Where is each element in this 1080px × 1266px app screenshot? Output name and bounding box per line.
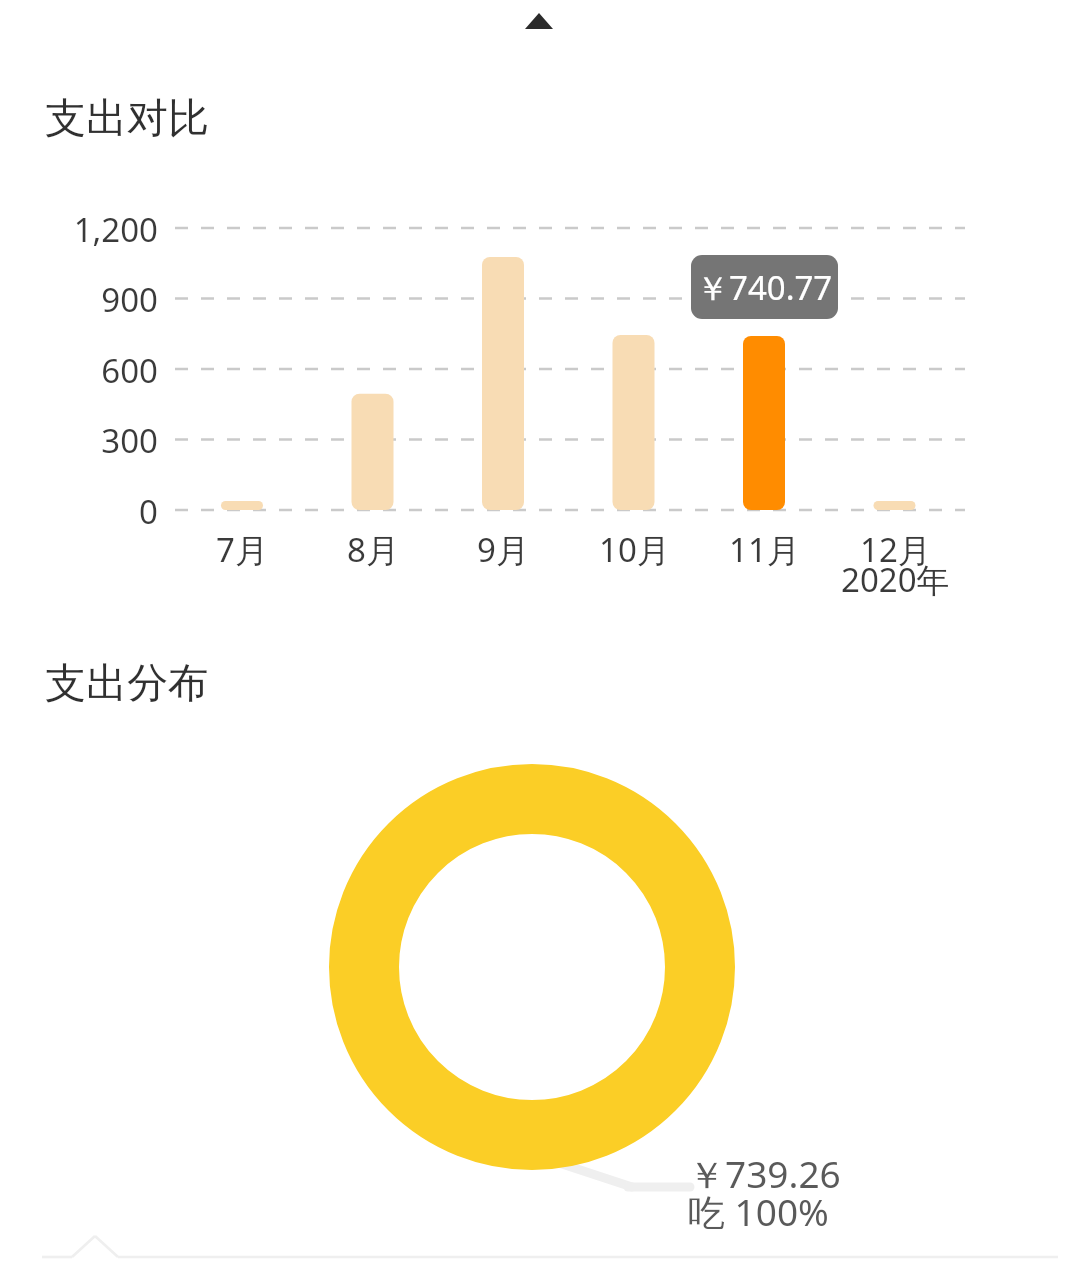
- staticText: 支出分布: [45, 658, 209, 710]
- staticText: 支出对比: [45, 93, 209, 145]
- button[interactable]: ￥740.77: [691, 255, 838, 319]
- staticText: 7月: [216, 527, 268, 571]
- staticText: 吃 100%: [688, 1186, 829, 1237]
- staticText: 0: [139, 489, 158, 531]
- staticText: 11月: [729, 527, 800, 571]
- other: Expense distribution chart: [0, 0, 1080, 1266]
- staticText: 8月: [347, 527, 399, 571]
- staticText: 1,200: [73, 207, 158, 249]
- staticText: 600: [101, 348, 158, 390]
- button[interactable]: Collapse: [511, 0, 567, 42]
- staticText: 10月: [599, 527, 670, 571]
- staticText: 12月: [860, 527, 931, 571]
- staticText: 2020年: [841, 557, 950, 601]
- staticText: 300: [101, 418, 158, 460]
- staticText: 900: [101, 277, 158, 319]
- staticText: ￥740.77: [696, 265, 833, 310]
- staticText: 9月: [477, 527, 529, 571]
- staticText: ￥739.26: [688, 1148, 841, 1199]
